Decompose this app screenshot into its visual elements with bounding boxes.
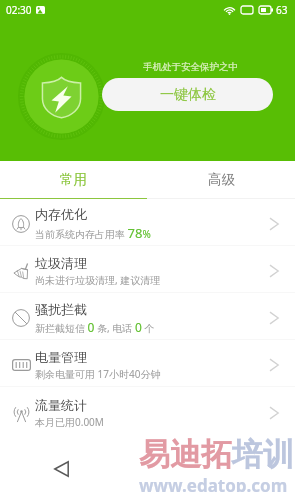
staticText: 当前系统内存占用率 78%: [35, 224, 151, 242]
staticText: 本月已用0.00M: [35, 415, 104, 429]
staticText: www.edatop.com: [139, 474, 288, 492]
staticText: 63: [276, 3, 288, 17]
staticText: 电量管理: [35, 349, 87, 365]
staticText: 手机处于安全保护之中: [143, 61, 238, 73]
staticText: 新拦截短信 0 条, 电话 0 个: [35, 319, 155, 335]
button[interactable]: 垃圾清理: [0, 246, 295, 293]
staticText: 高级: [208, 171, 235, 188]
staticText: 易迪拓培训: [139, 435, 294, 474]
staticText: 流量统计: [35, 397, 87, 413]
staticText: 常用: [60, 171, 87, 188]
staticText: 02:30: [6, 3, 32, 17]
staticText: 一键体检: [160, 86, 216, 104]
button[interactable]: Back: [43, 450, 80, 487]
button[interactable]: 电量管理: [0, 340, 295, 387]
staticText: 剩余电量可用 17小时40分钟: [35, 367, 161, 381]
button[interactable]: 骚扰拦截: [0, 293, 295, 340]
staticText: 内存优化: [35, 206, 87, 222]
staticText: 尚未进行垃圾清理, 建议清理: [35, 273, 161, 287]
button[interactable]: 内存优化: [0, 199, 295, 246]
button[interactable]: 常用: [0, 161, 147, 198]
button[interactable]: 高级: [147, 161, 295, 198]
button[interactable]: 一键体检: [102, 78, 273, 111]
staticText: 垃圾清理: [35, 255, 87, 271]
staticText: 骚扰拦截: [35, 301, 87, 317]
button[interactable]: 流量统计: [0, 387, 295, 434]
